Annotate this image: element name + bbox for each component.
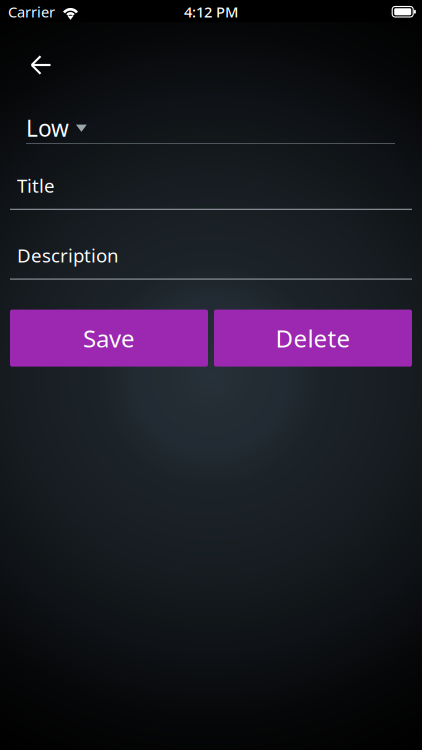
button[interactable]: Back [17, 37, 65, 93]
staticText: Delete [275, 322, 350, 354]
button[interactable]: Save [10, 310, 208, 367]
staticText: Save [83, 322, 135, 354]
button[interactable]: Delete [214, 310, 412, 367]
button[interactable]: Low [26, 113, 395, 143]
staticText: Carrier [8, 2, 55, 21]
button[interactable]: Title [0, 163, 422, 210]
staticText: Description [17, 243, 119, 268]
staticText: Low [26, 113, 69, 143]
button[interactable]: Description [0, 233, 422, 280]
staticText: Title [17, 173, 55, 198]
staticText: 4:12 PM [184, 2, 238, 21]
